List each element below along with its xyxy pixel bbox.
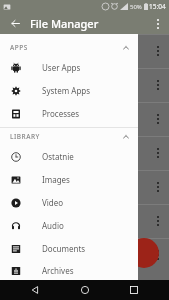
button[interactable]: Add <box>129 238 159 268</box>
staticText: Ostatnie <box>42 151 74 162</box>
staticText: System Apps <box>42 85 91 96</box>
button[interactable]: Back <box>0 13 30 34</box>
staticText: LIBRARY <box>10 132 40 141</box>
staticText: Audio <box>42 220 64 231</box>
button[interactable]: System Apps <box>0 79 138 102</box>
staticText: 50% <box>130 3 142 11</box>
button[interactable]: Video <box>0 191 138 214</box>
staticText: Images <box>42 174 70 185</box>
staticText: 15:04 <box>149 2 166 11</box>
staticText: File Manager <box>30 16 99 31</box>
button[interactable]: User Apps <box>0 56 138 79</box>
button[interactable]: Documents <box>0 237 138 260</box>
staticText: APPS <box>10 43 28 52</box>
button[interactable]: Recents <box>119 280 149 300</box>
staticText: Documents <box>42 243 86 254</box>
button[interactable]: Back <box>20 280 50 300</box>
button[interactable]: Images <box>0 168 138 191</box>
button[interactable]: Audio <box>0 214 138 237</box>
button[interactable]: Home <box>70 280 100 300</box>
button[interactable]: LIBRARY <box>0 128 138 145</box>
button[interactable]: Processes <box>0 102 138 125</box>
staticText: User Apps <box>42 62 81 73</box>
button[interactable]: APPS <box>0 39 138 56</box>
button[interactable]: More options <box>147 13 169 34</box>
button[interactable]: Archives <box>0 260 138 280</box>
button[interactable]: Ostatnie <box>0 145 138 168</box>
staticText: Processes <box>42 108 80 119</box>
staticText: Video <box>42 197 64 208</box>
staticText: Archives <box>42 265 74 276</box>
